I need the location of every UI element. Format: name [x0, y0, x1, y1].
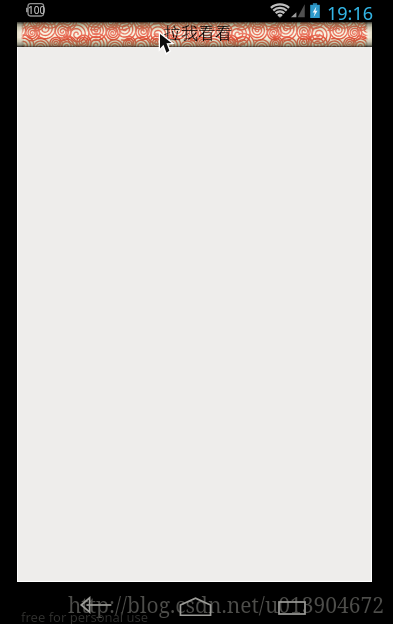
staticText: free for personal use	[21, 608, 149, 624]
staticText: 19:16	[327, 1, 374, 23]
staticText: http://blog.csdn.net/u013904672	[68, 591, 384, 620]
button[interactable]: Home	[176, 594, 214, 618]
button[interactable]: Recent apps	[273, 596, 311, 620]
staticText: 100	[28, 3, 46, 17]
button[interactable]: Back	[79, 593, 113, 617]
button[interactable]: 拉我看看	[17, 22, 372, 47]
staticText: 拉我看看	[164, 23, 232, 44]
